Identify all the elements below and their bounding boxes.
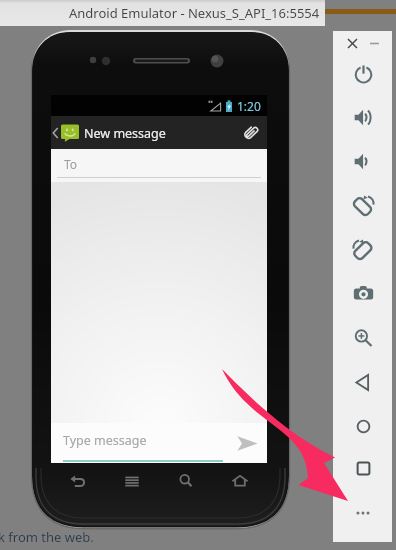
button[interactable]: Power [350,61,376,87]
button[interactable]: Type message [51,435,227,452]
staticText: New message [84,125,166,142]
button[interactable]: Overview [350,455,376,481]
button[interactable]: Back [51,468,105,492]
button[interactable]: Back [350,369,376,395]
button[interactable]: Minimize [365,34,383,52]
button[interactable]: Home [350,413,376,439]
button[interactable]: Menu [105,468,159,492]
button[interactable]: More [350,500,376,526]
button[interactable]: Rotate right [350,236,376,262]
staticText: 1:20 [237,98,261,114]
staticText: Type message [63,432,147,449]
staticText: k from the web. [0,528,94,546]
button[interactable]: Home [213,468,267,492]
button[interactable]: Send [227,423,267,463]
button[interactable]: Close [343,34,361,52]
button[interactable]: Rotate left [350,192,376,218]
button[interactable]: Attach [234,116,267,149]
staticText: To [64,156,78,172]
button[interactable]: Zoom in [350,325,376,351]
button[interactable]: Volume up [350,104,376,130]
button[interactable]: Search [159,468,213,492]
button[interactable]: Volume down [350,148,376,174]
staticText: Android Emulator - Nexus_S_API_16:5554 [69,4,320,22]
button[interactable]: Screenshot [350,280,376,306]
button[interactable]: New message [51,124,170,142]
